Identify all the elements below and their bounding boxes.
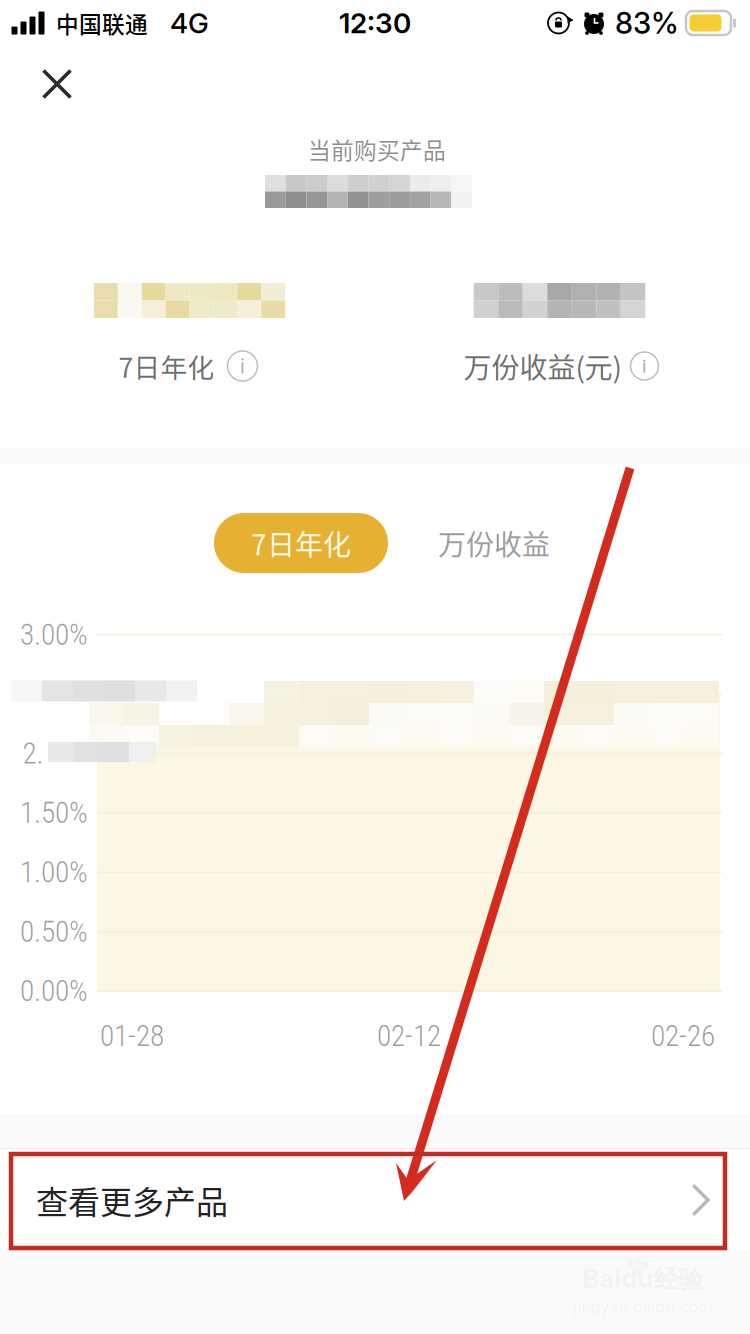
- staticText: 中国联通: [56, 7, 148, 39]
- staticText: 查看更多产品: [36, 1177, 228, 1223]
- staticText: i: [240, 354, 245, 378]
- staticText: 4G: [170, 6, 209, 40]
- staticText: 万份收益(元): [463, 346, 621, 386]
- staticText: 3.00%: [20, 617, 88, 652]
- staticText: 当前购买产品: [308, 133, 446, 165]
- staticText: 02-26: [651, 1019, 715, 1053]
- staticText: 1.00%: [20, 855, 88, 889]
- staticText: 02-12: [377, 1019, 441, 1053]
- button[interactable]: 关于 7 日年化: [227, 351, 257, 381]
- staticText: Baidu经验: [582, 1263, 703, 1295]
- staticText: i: [642, 355, 647, 377]
- button[interactable]: 万份收益: [419, 513, 569, 573]
- staticText: 83%: [615, 5, 679, 41]
- staticText: 1.50%: [20, 796, 88, 830]
- staticText: 12:30: [339, 6, 411, 40]
- staticText: 0.50%: [20, 914, 88, 949]
- staticText: 7日年化: [118, 347, 214, 385]
- staticText: 01-28: [100, 1019, 164, 1053]
- button[interactable]: 关于万份收益: [630, 352, 658, 380]
- button[interactable]: 查看更多产品: [0, 1151, 750, 1249]
- staticText: 2.: [22, 736, 43, 771]
- staticText: 7日年化: [251, 523, 351, 563]
- staticText: 万份收益: [438, 523, 550, 563]
- button[interactable]: Close: [18, 46, 96, 122]
- button[interactable]: 7日年化: [214, 513, 388, 573]
- staticText: 0.00%: [20, 974, 88, 1008]
